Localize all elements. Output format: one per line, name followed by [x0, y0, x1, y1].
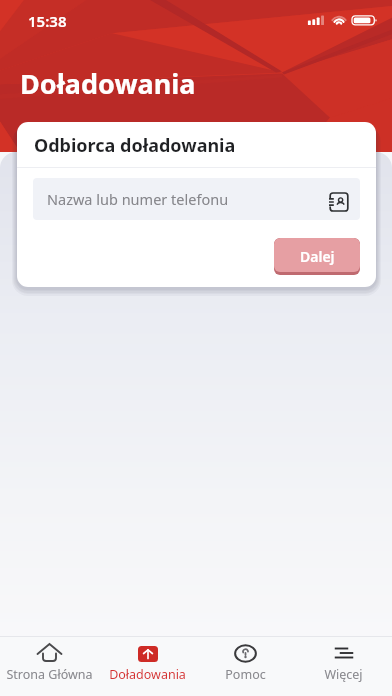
button[interactable]: Więcej: [294, 637, 392, 696]
button[interactable]: Pomoc: [196, 637, 294, 696]
staticText: Strona Główna: [6, 666, 93, 683]
staticText: Nazwa lub numer telefonu: [47, 189, 229, 209]
staticText: Doładowania: [20, 65, 196, 102]
button[interactable]: Doładowania: [98, 637, 196, 696]
staticText: Odbiorca doładowania: [34, 133, 236, 158]
staticText: Więcej: [324, 666, 363, 683]
staticText: Doładowania: [109, 666, 186, 683]
staticText: Pomoc: [225, 666, 266, 683]
button[interactable]: Dalej: [274, 238, 360, 275]
staticText: Dalej: [300, 247, 335, 266]
button[interactable]: Strona Główna: [0, 637, 98, 696]
staticText: 15:38: [28, 11, 67, 31]
button[interactable]: Wybierz z kontaktów: [329, 192, 349, 212]
button[interactable]: Nazwa lub numer telefonu: [33, 178, 360, 220]
